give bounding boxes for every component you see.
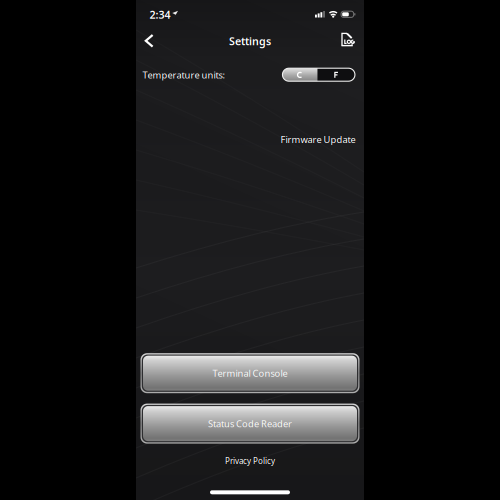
staticText: 2:34 <box>149 7 170 22</box>
button[interactable]: Status Code Reader <box>140 404 359 444</box>
staticText: Temperature units: <box>142 69 225 81</box>
button[interactable]: Log <box>339 32 355 49</box>
button[interactable]: Terminal Console <box>140 353 359 393</box>
button[interactable]: Privacy Policy <box>225 456 275 466</box>
staticText: Settings <box>229 34 271 48</box>
staticText: Firmware Update <box>280 133 355 146</box>
staticText: Status Code Reader <box>208 417 292 430</box>
button[interactable]: Temperature units <box>282 68 355 81</box>
button[interactable]: Firmware Update <box>280 133 355 146</box>
staticText: Terminal Console <box>212 367 287 379</box>
button[interactable]: Back <box>137 28 161 52</box>
staticText: Privacy Policy <box>225 456 275 466</box>
